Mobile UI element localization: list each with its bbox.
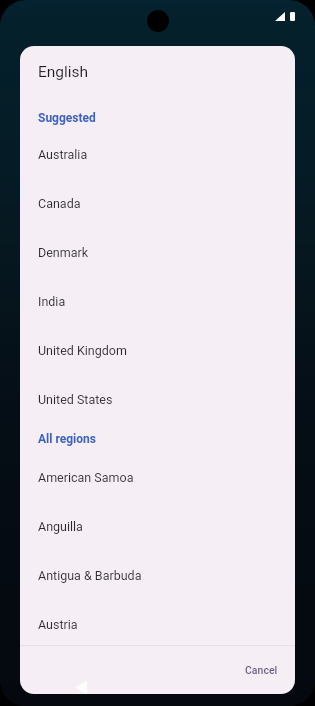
button[interactable]: Canada — [20, 187, 295, 236]
staticText: American Samoa — [38, 470, 134, 485]
button[interactable]: Antigua & Barbuda — [20, 559, 295, 608]
staticText: United States — [38, 392, 113, 407]
button[interactable]: United States — [20, 383, 295, 432]
staticText: Australia — [38, 147, 88, 162]
staticText: Anguilla — [38, 519, 83, 534]
button[interactable]: United Kingdom — [20, 334, 295, 383]
button[interactable]: Australia — [20, 138, 295, 187]
button[interactable]: Cancel — [239, 660, 284, 680]
button[interactable]: American Samoa — [20, 461, 295, 510]
staticText: Cancel — [245, 664, 278, 676]
staticText: United Kingdom — [38, 343, 127, 358]
other: Back — [75, 681, 87, 694]
staticText: All regions — [38, 432, 96, 446]
staticText: Suggested — [38, 111, 96, 125]
staticText: Denmark — [38, 245, 89, 260]
staticText: India — [38, 294, 66, 309]
staticText: Austria — [38, 617, 78, 632]
button[interactable]: Denmark — [20, 236, 295, 285]
button[interactable]: Anguilla — [20, 510, 295, 559]
staticText: English — [38, 63, 89, 81]
button[interactable]: India — [20, 285, 295, 334]
staticText: Antigua & Barbuda — [38, 568, 142, 583]
staticText: Canada — [38, 196, 81, 211]
button[interactable]: Austria — [20, 608, 295, 657]
